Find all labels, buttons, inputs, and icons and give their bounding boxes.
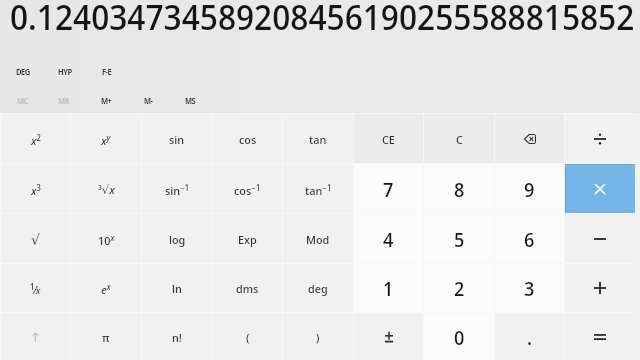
staticText: Mod [306,232,330,248]
staticText: 0 [454,324,465,350]
button[interactable]: 2 [424,264,494,312]
button[interactable]: CE [354,114,423,163]
staticText: M+ [101,95,112,106]
staticText: MS [185,95,196,106]
staticText: MR [58,95,70,106]
staticText: 9 [524,176,535,202]
staticText: MC [17,95,28,106]
button[interactable]: ) [283,313,353,360]
button[interactable]: x2 [1,114,70,163]
staticText: ex [101,281,111,297]
button[interactable]: √ [1,214,70,263]
staticText: x3 [31,182,41,198]
staticText: Exp [238,232,257,248]
staticText: 1⁄x [30,281,41,297]
button[interactable]: 5 [424,214,494,263]
staticText: deg [308,281,328,297]
staticText: tan−1 [305,182,332,198]
button[interactable]: Add [565,264,635,312]
button[interactable]: . [495,313,564,360]
button[interactable]: 6 [495,214,564,263]
button[interactable]: MC [1,88,43,112]
button[interactable]: MR [43,88,85,112]
button[interactable]: MS [169,88,211,112]
button[interactable]: Multiply [565,164,635,213]
button[interactable]: ↑ [1,313,70,360]
button[interactable]: xy [71,114,141,163]
button[interactable]: ln [142,264,212,312]
button[interactable]: Divide [565,114,635,163]
button[interactable]: 10x [71,214,141,263]
staticText: dms [236,281,259,297]
staticText: log [169,232,186,248]
button[interactable]: n! [142,313,212,360]
other: Divide [594,133,606,145]
button[interactable]: ex [71,264,141,312]
button[interactable]: Backspace [495,114,564,163]
button[interactable]: 1 [354,264,423,312]
button[interactable]: ( [213,313,282,360]
button[interactable]: Mod [283,214,353,263]
button[interactable]: 3√x [71,164,141,213]
staticText: M- [144,95,153,106]
staticText: ( [246,330,250,346]
staticText: CE [382,132,395,148]
button[interactable]: C [424,114,494,163]
button[interactable]: deg [283,264,353,312]
button[interactable]: dms [213,264,282,312]
button[interactable]: 8 [424,164,494,213]
other: Add [594,282,606,294]
staticText: ln [172,281,182,297]
staticText: 3√x [98,182,115,198]
staticText: 1 [383,275,394,301]
button[interactable]: 4 [354,214,423,263]
staticText: cos−1 [234,182,261,198]
button[interactable]: tan−1 [283,164,353,213]
staticText: 2 [454,275,465,301]
button[interactable]: log [142,214,212,263]
other: Backspace [524,134,536,144]
staticText: 0.124034734589208456190255588815852 [10,0,635,40]
staticText: HYP [58,66,72,77]
button[interactable]: 1⁄x [1,264,70,312]
staticText: C [456,132,463,148]
staticText: 3 [524,275,535,301]
staticText: . [527,324,532,350]
button[interactable]: tan [283,114,353,163]
staticText: 7 [383,176,394,202]
button[interactable]: F-E [86,59,128,83]
button[interactable]: Subtract [565,214,635,263]
button[interactable]: π [71,313,141,360]
staticText: tan [309,132,327,148]
button[interactable]: M+ [85,88,127,112]
button[interactable]: cos−1 [213,164,282,213]
staticText: ) [316,330,320,346]
button[interactable]: HYP [44,59,86,83]
staticText: sin−1 [165,182,190,198]
staticText: 5 [454,226,465,252]
button[interactable]: Positive negative [354,313,423,360]
button[interactable]: x3 [1,164,70,213]
button[interactable]: DEG [2,59,44,83]
staticText: 4 [383,226,394,252]
staticText: DEG [16,66,30,77]
other: Equals [594,331,606,343]
button[interactable]: 9 [495,164,564,213]
button[interactable]: sin [142,114,212,163]
staticText: F-E [102,66,112,77]
staticText: sin [169,132,185,148]
button[interactable]: Equals [565,313,635,360]
button[interactable]: Exp [213,214,282,263]
button[interactable]: 0 [424,313,494,360]
staticText: √ [31,232,40,248]
button[interactable]: 7 [354,164,423,213]
staticText: cos [239,132,257,148]
button[interactable]: 3 [495,264,564,312]
staticText: xy [101,132,111,148]
staticText: π [102,330,110,346]
other: Positive negative [385,331,393,343]
button[interactable]: cos [213,114,282,163]
staticText: 8 [454,176,465,202]
button[interactable]: M- [127,88,169,112]
button[interactable]: sin−1 [142,164,212,213]
